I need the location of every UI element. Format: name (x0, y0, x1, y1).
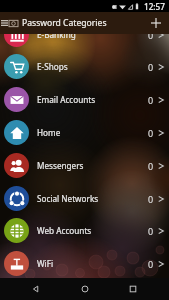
staticText: 0 (148, 127, 154, 139)
button[interactable]: Home (73, 278, 97, 300)
staticText: 12:57 (144, 1, 165, 12)
staticText: 0 (148, 34, 154, 41)
staticText: 0 (148, 193, 154, 205)
staticText: 0 (148, 94, 154, 106)
staticText: WiFi (37, 258, 54, 269)
button[interactable]: Home (0, 116, 169, 149)
staticText: Social Networks (37, 193, 99, 204)
staticText: Home (37, 127, 61, 138)
button[interactable]: Email Accounts (0, 83, 169, 116)
button[interactable]: Social Networks (0, 182, 169, 215)
button[interactable]: Recent apps (121, 278, 145, 300)
button[interactable]: WiFi (0, 247, 169, 278)
button[interactable]: E-Banking (0, 34, 169, 51)
button[interactable]: Web Accounts (0, 214, 169, 247)
staticText: 0 (148, 258, 154, 270)
staticText: Password Categories (22, 17, 107, 29)
staticText: 0 (148, 160, 154, 172)
button[interactable]: E-Shops (0, 50, 169, 83)
staticText: Web Accounts (37, 225, 92, 236)
staticText: E-Banking (37, 34, 76, 40)
staticText: 0 (148, 225, 154, 237)
button[interactable]: Add category (145, 12, 167, 34)
button[interactable]: Open navigation drawer (0, 12, 8, 34)
button[interactable]: Back (24, 278, 48, 300)
button[interactable]: Messengers (0, 149, 169, 182)
staticText: 0 (148, 61, 154, 73)
staticText: Messengers (37, 160, 84, 171)
staticText: Email Accounts (37, 94, 96, 105)
staticText: E-Shops (37, 61, 68, 72)
